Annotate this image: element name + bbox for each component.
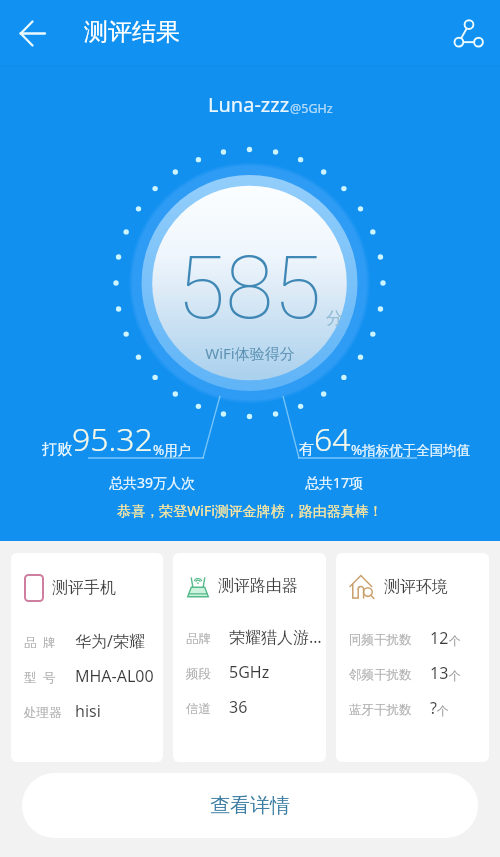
staticText: %用户: [153, 441, 192, 459]
staticText: 有: [299, 440, 314, 459]
staticText: 个: [449, 668, 461, 683]
staticText: 测评路由器: [218, 576, 298, 596]
button[interactable]: 测评手机: [11, 553, 163, 762]
staticText: 品牌: [186, 631, 211, 647]
staticText: 邻频干扰数: [349, 667, 412, 683]
staticText: 打败: [42, 440, 72, 459]
staticText: %指标优于全国均值: [351, 441, 471, 459]
staticText: 12: [430, 627, 449, 649]
staticText: 13: [430, 662, 449, 684]
staticText: WiFi体验得分: [0, 343, 500, 363]
staticText: 查看详情: [210, 793, 290, 818]
staticText: 华为/荣耀: [75, 630, 145, 652]
staticText: 信道: [186, 701, 211, 717]
staticText: 总共17项: [305, 473, 364, 492]
staticText: 95.32: [72, 417, 153, 461]
button[interactable]: 查看详情: [22, 773, 478, 838]
staticText: 测评环境: [384, 577, 448, 597]
staticText: 测评结果: [84, 17, 180, 47]
button[interactable]: Share: [438, 0, 500, 66]
staticText: 个: [449, 633, 461, 648]
staticText: 分: [326, 308, 343, 329]
staticText: 频段: [186, 666, 211, 682]
staticText: 64: [314, 417, 351, 461]
staticText: 同频干扰数: [349, 632, 412, 648]
button[interactable]: 测评路由器: [173, 553, 326, 762]
staticText: Luna-zzz: [208, 91, 290, 118]
staticText: 个: [437, 703, 449, 718]
staticText: 5GHz: [229, 661, 270, 683]
button[interactable]: Back: [0, 0, 64, 66]
staticText: 总共39万人次: [109, 473, 196, 492]
staticText: ?: [430, 697, 437, 719]
staticText: 恭喜，荣登WiFi测评金牌榜，路由器真棒！: [0, 501, 500, 520]
staticText: 型 号: [24, 669, 56, 686]
staticText: 处理器: [24, 705, 62, 721]
staticText: MHA-AL00: [75, 665, 154, 687]
staticText: 荣耀猎人游…: [229, 626, 322, 648]
button[interactable]: 测评环境: [336, 553, 489, 762]
staticText: 585: [177, 236, 322, 339]
staticText: @5GHz: [290, 100, 333, 117]
staticText: 测评手机: [52, 578, 116, 598]
staticText: hisi: [75, 700, 101, 722]
staticText: 36: [229, 696, 248, 718]
staticText: 品 牌: [24, 634, 56, 651]
staticText: 蓝牙干扰数: [349, 702, 412, 718]
